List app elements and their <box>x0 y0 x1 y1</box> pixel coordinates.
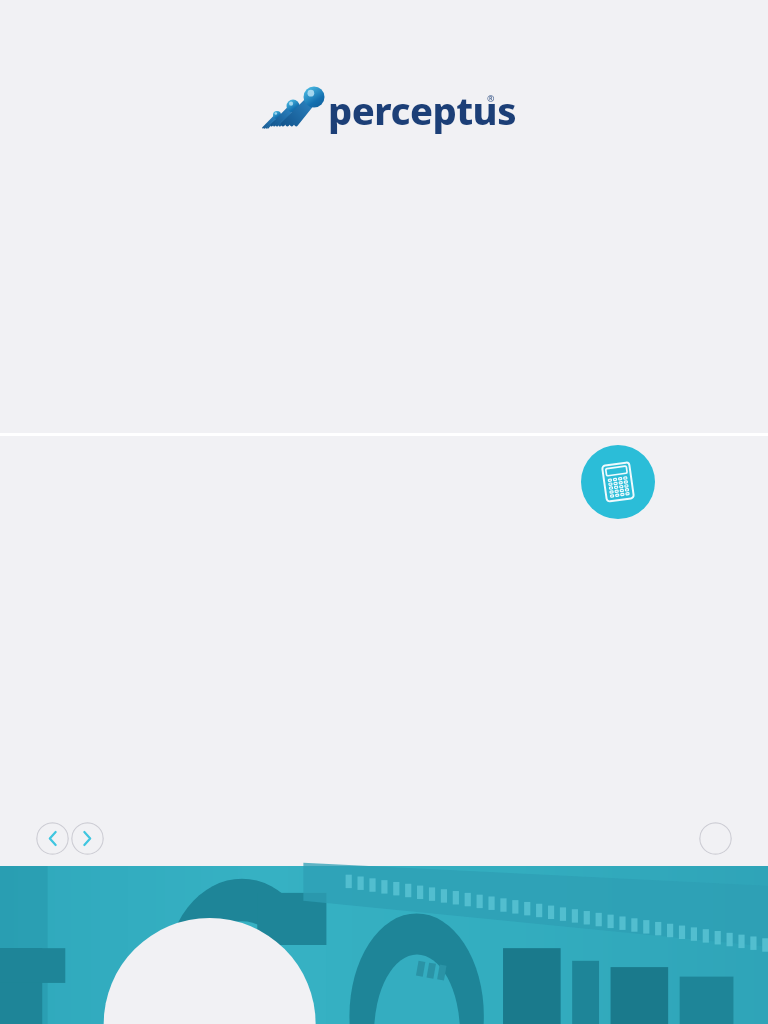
staticText: perceptus <box>328 84 517 136</box>
button[interactable]: Security conference banner <box>0 866 768 1024</box>
button[interactable]: Next <box>71 822 104 855</box>
staticText: ® <box>487 92 495 104</box>
button[interactable]: Previous <box>36 822 69 855</box>
button[interactable]: Indicator <box>699 822 732 855</box>
button[interactable]: Calculator <box>581 445 655 519</box>
button[interactable]: Perceptus logo <box>264 78 504 140</box>
